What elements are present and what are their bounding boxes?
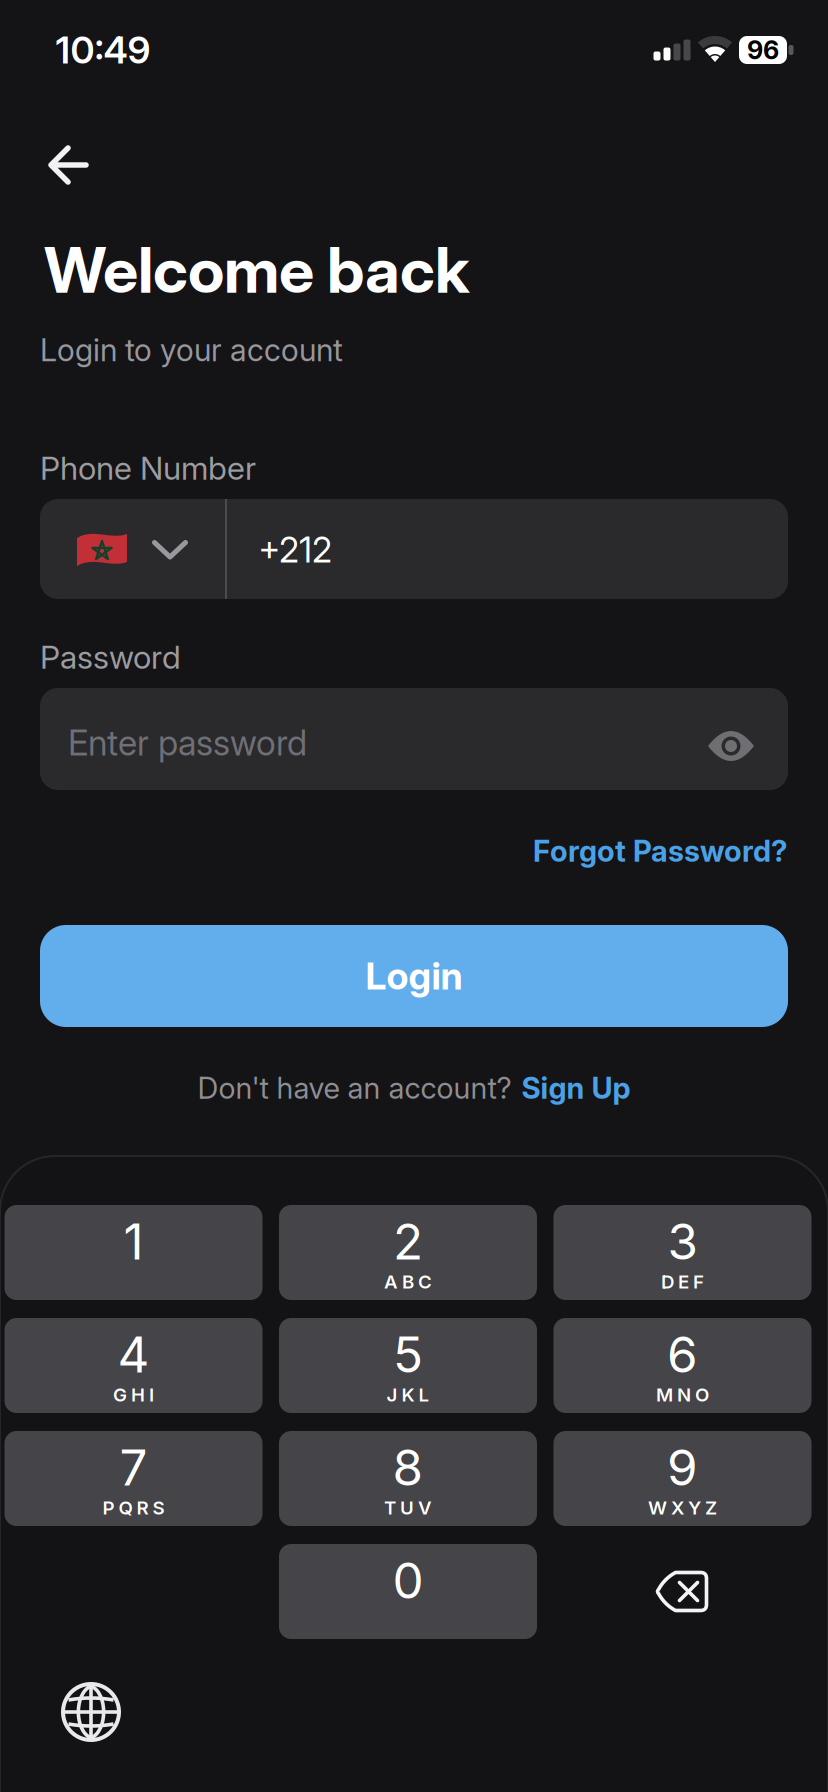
staticText: Login: [365, 954, 462, 998]
button[interactable]: 0: [279, 1544, 537, 1639]
staticText: Don't have an account?: [197, 1071, 511, 1105]
button[interactable]: Delete: [656, 1570, 708, 1612]
staticText: 5: [393, 1325, 423, 1384]
staticText: 1: [123, 1212, 143, 1271]
button[interactable]: 9: [553, 1431, 811, 1526]
staticText: 7: [119, 1438, 147, 1497]
staticText: GHI: [113, 1384, 154, 1406]
staticText: 0: [392, 1551, 423, 1610]
staticText: 9: [667, 1438, 698, 1497]
staticText: 6: [667, 1325, 698, 1384]
button[interactable]: 5: [279, 1318, 537, 1413]
button[interactable]: Forgot Password?: [533, 834, 788, 868]
button[interactable]: 6: [553, 1318, 811, 1413]
staticText: Forgot Password?: [533, 834, 788, 868]
staticText: 3: [667, 1212, 697, 1271]
staticText: Welcome back: [44, 232, 469, 308]
button[interactable]: Phone number, +212: [40, 499, 788, 599]
button[interactable]: 2: [279, 1205, 537, 1300]
staticText: 4: [117, 1325, 149, 1384]
staticText: Enter password: [68, 723, 307, 763]
staticText: 10:49: [55, 28, 150, 72]
staticText: PQRS: [102, 1497, 164, 1519]
button[interactable]: 4: [4, 1318, 262, 1413]
staticText: MNO: [656, 1384, 709, 1406]
staticText: WXYZ: [648, 1497, 717, 1519]
button[interactable]: Back: [48, 145, 88, 185]
staticText: Login to your account: [40, 332, 343, 368]
button[interactable]: 7: [4, 1431, 262, 1526]
staticText: Password: [40, 638, 181, 676]
staticText: +212: [258, 530, 332, 570]
staticText: TUV: [384, 1497, 432, 1519]
button[interactable]: 8: [279, 1431, 537, 1526]
button[interactable]: 3: [553, 1205, 811, 1300]
button[interactable]: Change keyboard: [62, 1683, 120, 1741]
staticText: ABC: [384, 1271, 432, 1293]
button[interactable]: Login: [40, 925, 788, 1027]
staticText: Sign Up: [521, 1071, 630, 1105]
staticText: 2: [393, 1212, 423, 1271]
button[interactable]: Enter password: [40, 688, 788, 790]
button[interactable]: Show password: [708, 730, 754, 762]
staticText: 8: [392, 1438, 423, 1497]
button[interactable]: 1: [4, 1205, 262, 1300]
staticText: JKL: [386, 1384, 429, 1406]
button[interactable]: Sign Up: [521, 1071, 630, 1105]
staticText: Phone Number: [40, 449, 256, 487]
staticText: DEF: [661, 1271, 704, 1293]
staticText: 96: [747, 35, 779, 65]
